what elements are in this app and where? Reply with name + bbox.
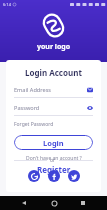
staticText: your logo — [37, 42, 71, 52]
button[interactable]: Forget Password — [14, 120, 54, 129]
staticText: or — [50, 157, 56, 164]
button[interactable]: Sign in with Facebook — [48, 170, 60, 182]
staticText: Don't have an account ? — [26, 155, 82, 162]
staticText: 6:14 — [3, 2, 11, 7]
button[interactable]: Back — [18, 197, 30, 209]
button[interactable]: Register — [33, 163, 75, 176]
button[interactable]: Sign in with Google — [28, 170, 40, 182]
button[interactable]: Password — [14, 104, 93, 116]
button[interactable]: Home — [48, 197, 60, 209]
staticText: Login — [43, 138, 64, 148]
staticText: Password — [14, 104, 87, 112]
button[interactable]: Sign in with Twitter — [68, 170, 80, 182]
staticText: Login Account — [25, 67, 82, 78]
other: Email — [87, 87, 93, 93]
staticText: Email Address — [14, 86, 87, 94]
button[interactable]: Email Address — [14, 86, 93, 98]
button[interactable]: Login — [14, 135, 93, 150]
staticText: Register — [37, 164, 71, 175]
button[interactable]: Recent apps — [77, 197, 89, 209]
staticText: Forget Password — [14, 121, 54, 128]
button[interactable]: Show password — [87, 105, 93, 111]
